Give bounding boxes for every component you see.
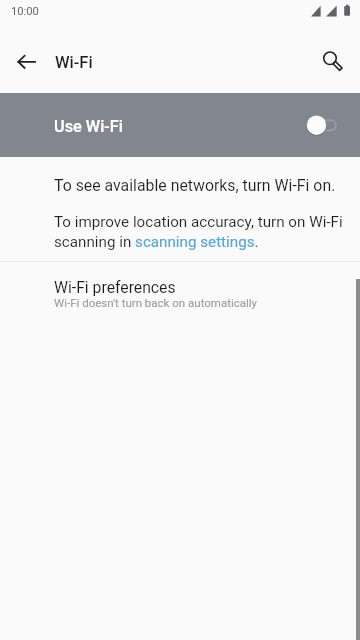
staticText: 10:00 [11, 5, 39, 18]
staticText: Use Wi-Fi [54, 117, 123, 136]
button[interactable]: Search [306, 38, 354, 86]
staticText: Wi-Fi [55, 53, 93, 72]
staticText: To see available networks, turn Wi-Fi on… [54, 176, 336, 195]
button[interactable]: Back [3, 38, 51, 86]
staticText: To improve location accuracy, turn on Wi… [54, 213, 343, 251]
button[interactable]: Wi-Fi preferences [0, 262, 360, 322]
button[interactable]: Use Wi-Fi [0, 93, 360, 157]
staticText: Wi-Fi doesn't turn back on automatically [54, 296, 258, 309]
staticText: Wi-Fi preferences [54, 278, 176, 296]
